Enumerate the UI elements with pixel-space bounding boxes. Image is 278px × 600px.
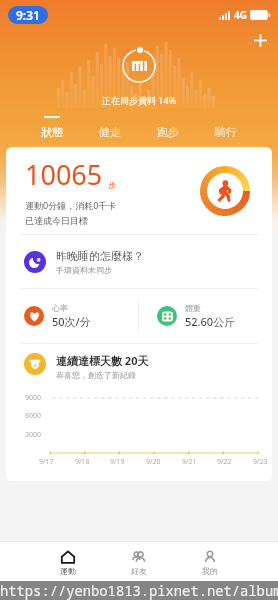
staticText: 昨晚睡的怎麼樣？ [56,249,144,263]
staticText: 9/19 [110,457,125,467]
button[interactable]: 好友 [103,542,174,600]
staticText: 3000 [25,430,42,440]
staticText: 狀態 [41,125,63,139]
staticText: 9/23 [253,457,268,467]
button[interactable]: 運動 [33,542,103,600]
staticText: 運動 [60,566,76,576]
button[interactable]: 心率 [6,289,138,343]
staticText: 我的 [202,566,218,576]
staticText: 9:31 [16,7,40,23]
button[interactable]: Sync status [120,47,158,85]
button[interactable]: 我的 [174,542,245,600]
staticText: 體重 [185,303,201,313]
staticText: 9/18 [75,457,90,467]
staticText: 手環資料未同步 [56,265,112,275]
staticText: 4G [234,8,247,22]
staticText: 騎行 [215,125,237,139]
button[interactable]: 狀態 [23,114,81,146]
staticText: 50次/分 [52,314,91,329]
staticText: 心率 [52,303,68,313]
staticText: 步 [108,180,116,190]
staticText: 好友 [131,566,147,576]
staticText: 正在同步資料 14% [102,94,177,106]
button[interactable]: 連續達標天數 20天 [6,344,272,380]
staticText: 9000 [25,393,42,403]
staticText: 已達成今日目標 [25,215,88,226]
staticText: https://yenbo1813.pixnet.net/album [0,581,278,600]
staticText: 運動0分鐘，消耗0千卡 [25,199,117,211]
button[interactable]: 10065 [6,147,272,234]
staticText: 9/22 [217,457,232,467]
staticText: 連續達標天數 20天 [56,353,149,368]
button[interactable]: 跑步 [139,114,197,146]
staticText: 跑步 [157,125,179,139]
staticText: 健走 [99,125,121,139]
staticText: 9/21 [182,457,197,467]
button[interactable]: 健走 [81,114,139,146]
button[interactable]: 騎行 [197,114,255,146]
button[interactable]: 昨晚睡的怎麼樣？ [6,235,272,288]
staticText: 9/17 [39,457,54,467]
staticText: 6000 [25,411,42,421]
staticText: 52.60公斤 [185,314,236,329]
button[interactable]: 體重 [139,289,272,343]
staticText: 10065 [25,156,103,193]
staticText: 恭喜您，創造了新紀錄 [56,370,136,380]
staticText: 9/20 [146,457,161,467]
button[interactable]: Add device [246,26,274,54]
